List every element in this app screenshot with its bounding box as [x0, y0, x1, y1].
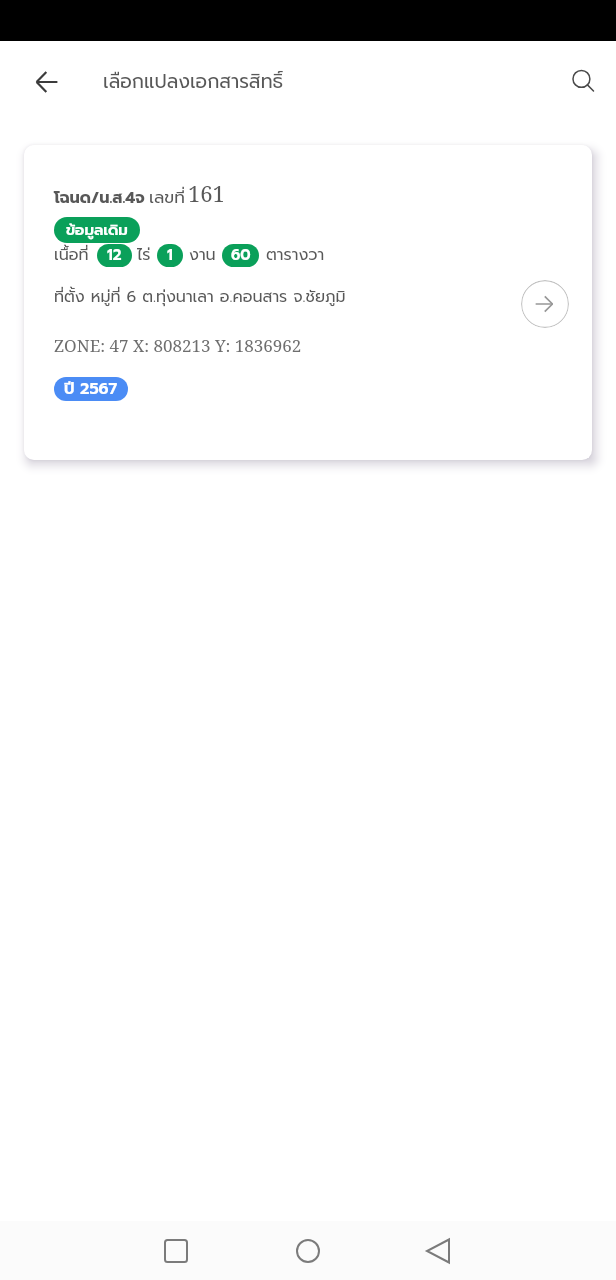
button[interactable]: Home: [284, 1227, 332, 1275]
staticText: ZONE: 47 X: 808213 Y: 1836962: [54, 334, 302, 357]
staticText: 161: [188, 178, 225, 208]
staticText: งาน: [189, 243, 216, 267]
staticText: เนื้อที่: [54, 243, 89, 267]
button[interactable]: 1: [157, 244, 183, 267]
staticText: ที่ตั้ง หมู่ที่ 6 ต.ทุ่งนาเลา อ.คอนสาร จ…: [54, 285, 346, 309]
button[interactable]: โฉนด/น.ส.4จ: [24, 145, 592, 460]
button[interactable]: ข้อมูลเดิม: [54, 217, 140, 243]
staticText: เลือกแปลงเอกสารสิทธิ์: [103, 67, 284, 96]
staticText: ตารางวา: [266, 243, 325, 267]
button[interactable]: 12: [97, 244, 132, 267]
staticText: 12: [107, 244, 122, 267]
staticText: ข้อมูลเดิม: [66, 219, 128, 242]
staticText: ปี 2567: [64, 377, 118, 401]
button[interactable]: ปี 2567: [54, 377, 128, 401]
staticText: ไร่: [137, 243, 151, 267]
button[interactable]: Search: [559, 58, 607, 106]
button[interactable]: Open details: [521, 280, 569, 328]
button[interactable]: Recents: [152, 1227, 200, 1275]
staticText: โฉนด/น.ส.4จ: [54, 186, 145, 210]
staticText: 1: [167, 244, 173, 267]
staticText: เลขที่: [149, 184, 185, 210]
button[interactable]: Back: [23, 58, 71, 106]
staticText: 60: [231, 244, 251, 267]
button[interactable]: 60: [222, 244, 259, 267]
button[interactable]: Back: [414, 1227, 462, 1275]
